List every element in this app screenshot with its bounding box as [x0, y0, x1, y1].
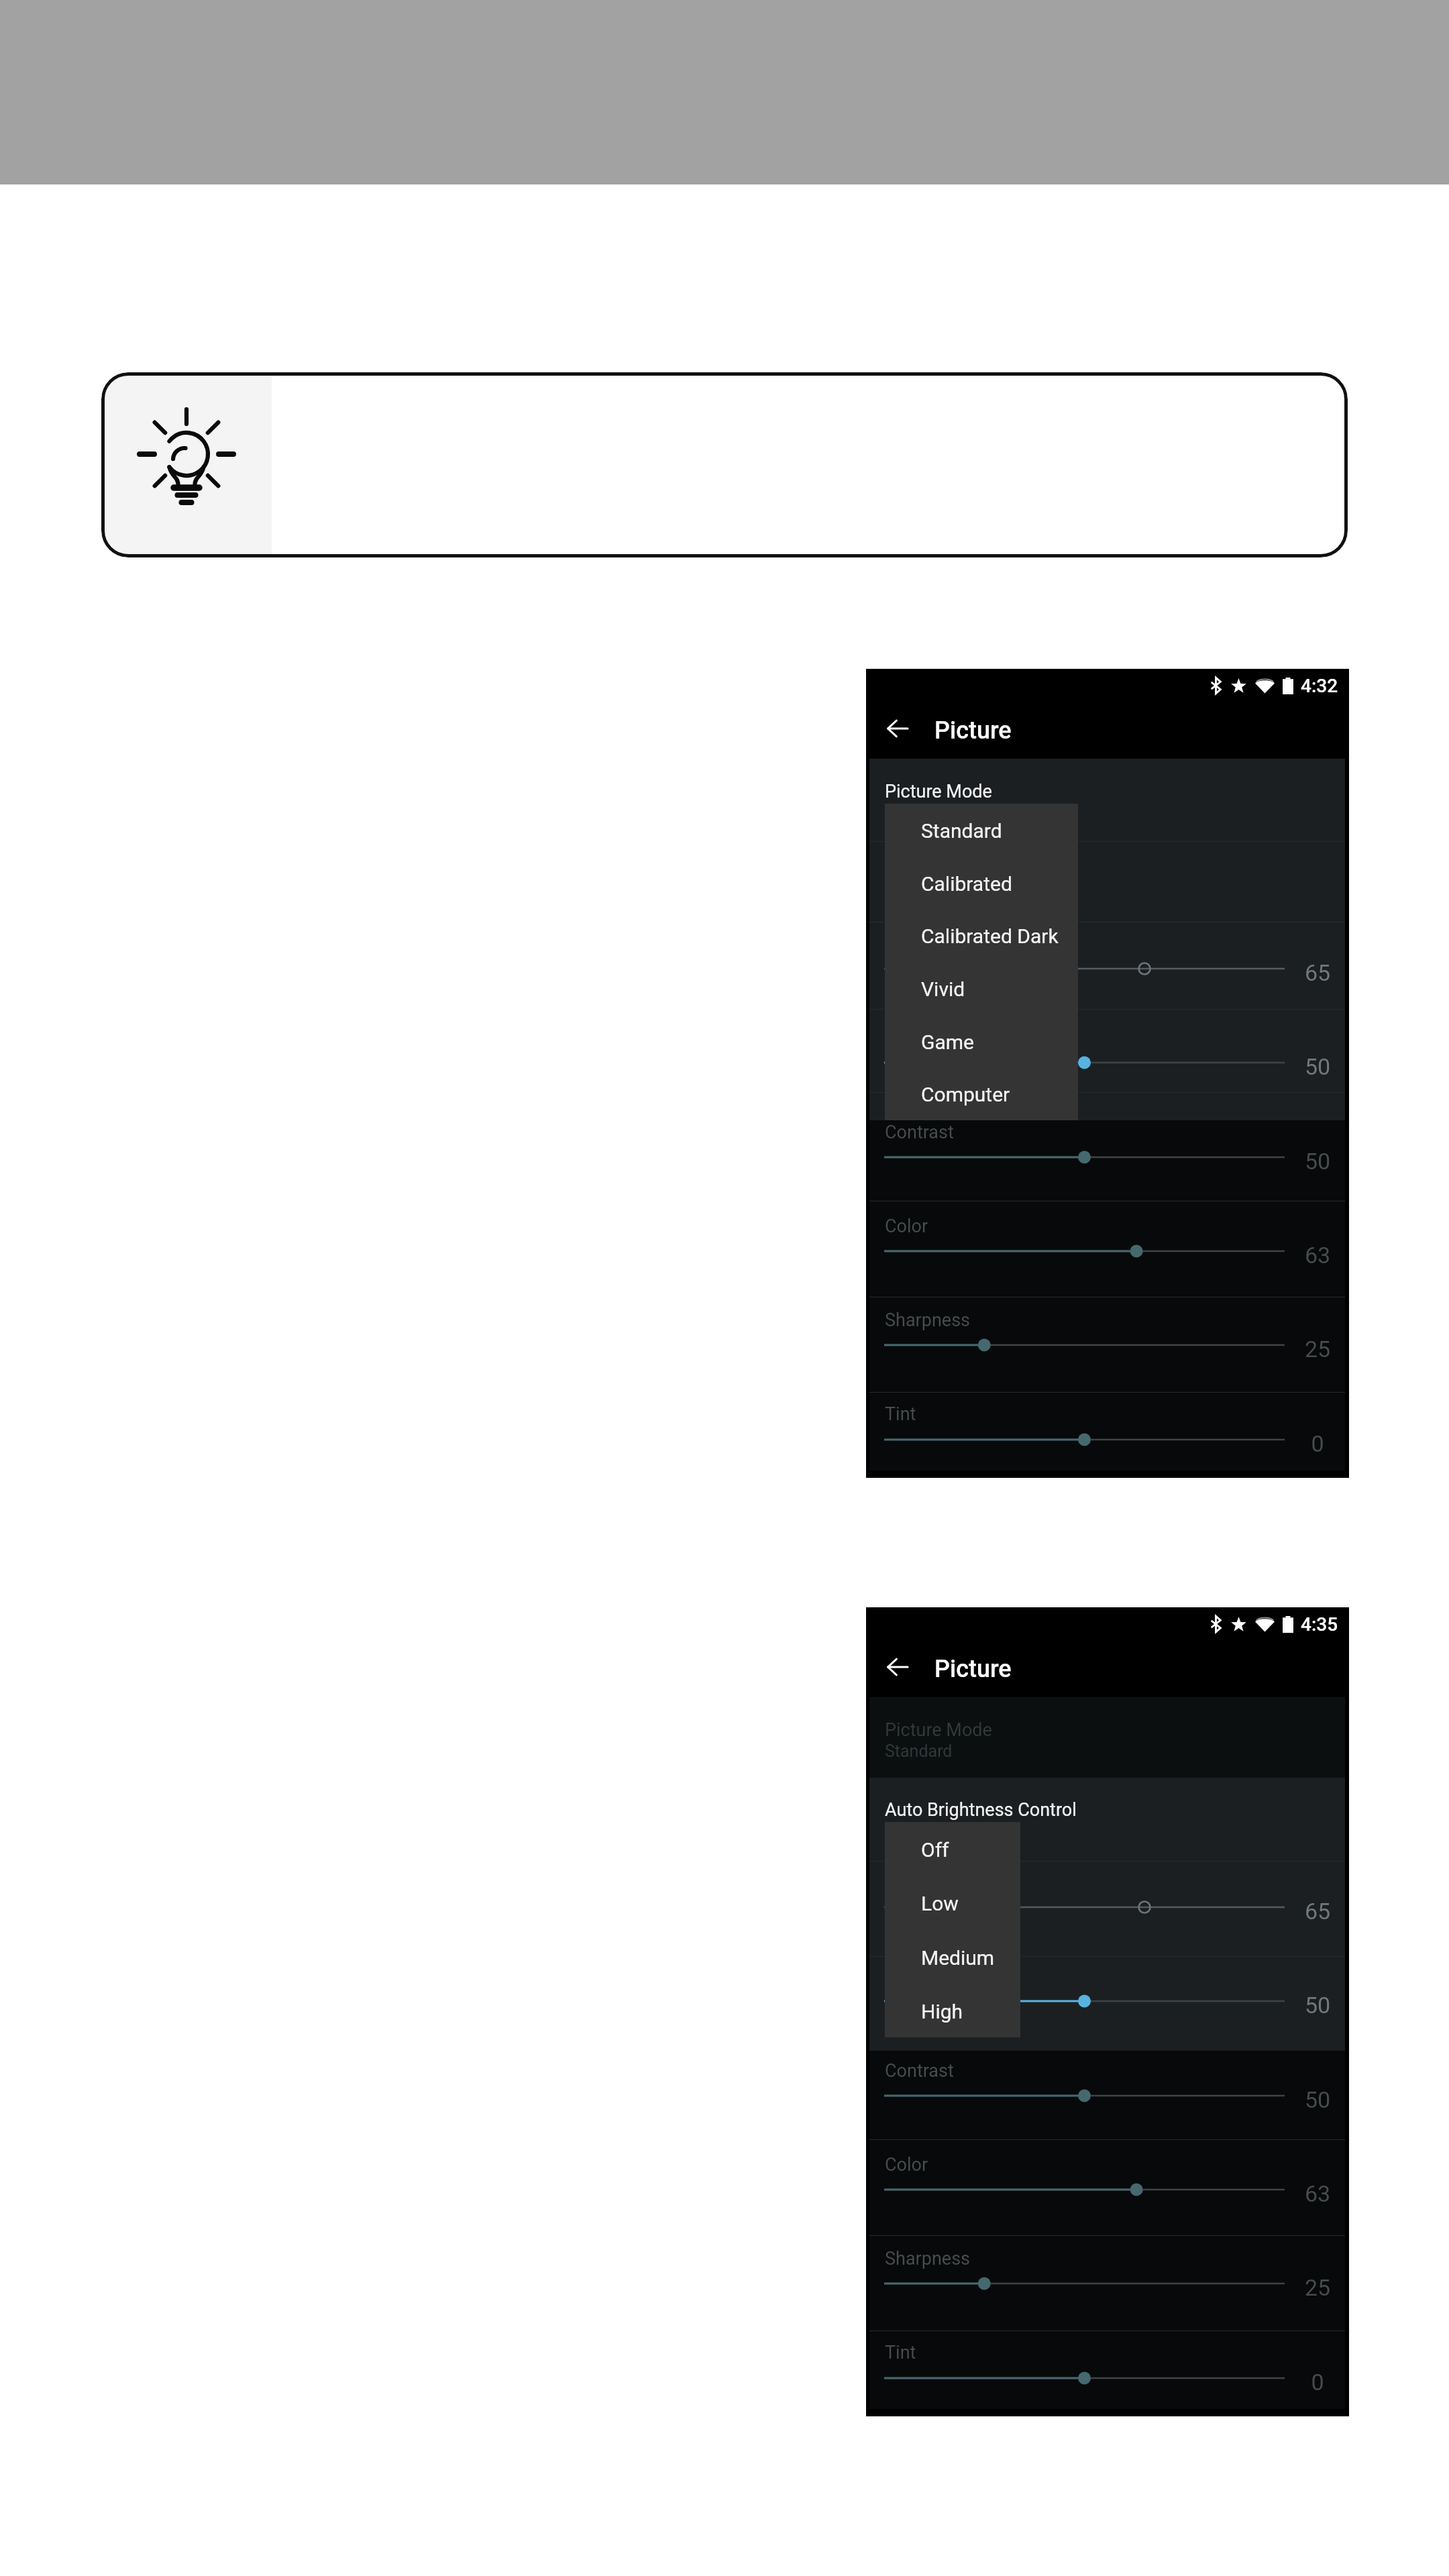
button[interactable]: High [885, 1984, 1020, 2037]
staticText: Contrast [885, 2060, 954, 2082]
staticText: 4:35 [1301, 1613, 1338, 1635]
button[interactable]: Tint [884, 2369, 1285, 2387]
button[interactable]: Tint [884, 1430, 1285, 1449]
button[interactable]: Sharpness [884, 1336, 1285, 1354]
button[interactable]: Tip [101, 372, 272, 557]
staticText: Computer [921, 1083, 1010, 1106]
button[interactable]: Brightness [884, 1898, 1285, 1917]
staticText: Calibrated [921, 872, 1012, 896]
staticText: Standard [921, 819, 1002, 843]
staticText: 25 [1287, 1336, 1348, 1362]
staticText: 0 [1287, 1430, 1348, 1457]
staticText: Picture [934, 716, 1012, 745]
staticText: Auto Brightness Control [885, 1799, 1077, 1821]
staticText: 4:32 [1301, 675, 1338, 697]
staticText: 63 [1287, 2180, 1348, 2207]
button[interactable]: Back [883, 714, 912, 743]
button[interactable]: Low [885, 1876, 1020, 1929]
staticText: Picture Mode [885, 1719, 992, 1741]
button[interactable]: Back [883, 1652, 912, 1682]
staticText: Standard [885, 1741, 953, 1761]
staticText: Game [921, 1030, 974, 1054]
staticText: 50 [1287, 1992, 1348, 2019]
button[interactable]: Vivid [885, 962, 1078, 1015]
staticText: Medium [921, 1946, 995, 1970]
staticText: 0 [1287, 2369, 1348, 2396]
staticText: Low [921, 1892, 959, 1915]
staticText: Sharpness [885, 1309, 970, 1331]
button[interactable]: Tip [101, 372, 1348, 557]
button[interactable]: Medium [885, 1930, 1020, 1984]
button[interactable]: Brightness [884, 959, 1285, 978]
button[interactable]: Color [884, 2180, 1285, 2199]
button[interactable]: Calibrated [885, 857, 1078, 910]
staticText: Tint [885, 2342, 916, 2363]
button[interactable]: Sharpness [884, 2274, 1285, 2293]
staticText: Color [885, 2154, 928, 2176]
button[interactable]: Backlight [884, 1053, 1285, 1072]
staticText: High [921, 2000, 963, 2023]
staticText: Picture Mode [885, 781, 992, 802]
staticText: 63 [1287, 1242, 1348, 1269]
button[interactable]: Off [885, 1822, 1020, 1876]
button[interactable]: Backlight [884, 1992, 1285, 2010]
staticText: Calibrated Dark [921, 924, 1059, 948]
staticText: Picture [934, 1655, 1012, 1683]
staticText: 65 [1287, 959, 1348, 986]
staticText: Off [921, 1838, 949, 1862]
staticText: 65 [1287, 1898, 1348, 1925]
staticText: Vivid [921, 977, 965, 1001]
button[interactable]: Color [884, 1242, 1285, 1260]
button[interactable]: Contrast [884, 2086, 1285, 2105]
staticText: Tint [885, 1403, 916, 1425]
staticText: 50 [1287, 1053, 1348, 1080]
staticText: 25 [1287, 2274, 1348, 2301]
staticText: Color [885, 1216, 928, 1237]
staticText: Sharpness [885, 2248, 970, 2269]
staticText: 50 [1287, 1148, 1348, 1175]
button[interactable]: Computer [885, 1067, 1078, 1120]
staticText: 50 [1287, 2086, 1348, 2113]
button[interactable]: Contrast [884, 1148, 1285, 1167]
button[interactable]: Calibrated Dark [885, 909, 1078, 962]
staticText: Contrast [885, 1122, 954, 1143]
button[interactable]: Standard [885, 804, 1078, 857]
button[interactable]: Game [885, 1015, 1078, 1068]
